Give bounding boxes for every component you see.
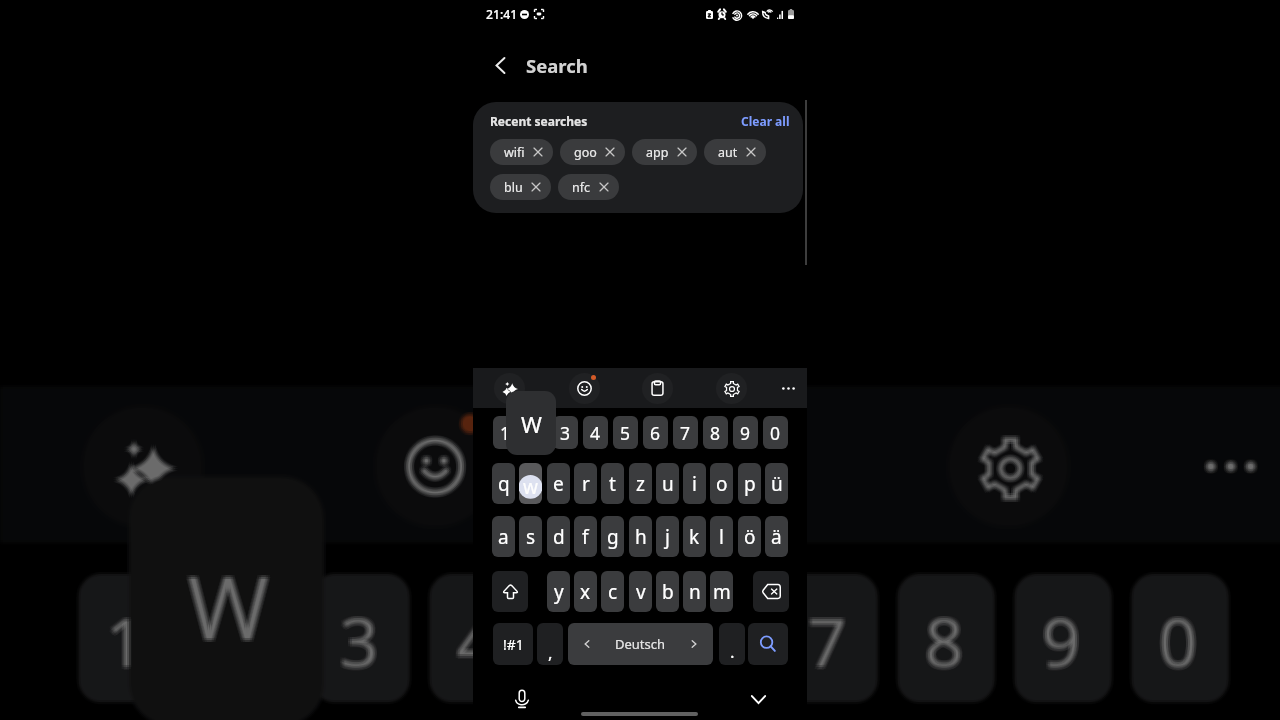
staticText: 6	[693, 595, 735, 689]
staticText: 0	[1159, 595, 1201, 689]
button[interactable]: z	[629, 463, 652, 504]
staticText: 1	[106, 593, 148, 687]
button[interactable]: o	[710, 463, 733, 504]
staticText: 7	[810, 595, 852, 689]
button[interactable]: w	[519, 463, 542, 504]
button[interactable]: b	[656, 571, 679, 612]
button[interactable]: 1	[493, 416, 518, 449]
staticText: 7	[806, 591, 848, 685]
button[interactable]: 8	[703, 416, 728, 449]
button[interactable]: g	[601, 516, 624, 557]
button[interactable]: m	[710, 571, 733, 612]
button[interactable]: Space, Deutsch	[568, 623, 713, 665]
button[interactable]: e	[547, 463, 570, 504]
button[interactable]: j	[656, 516, 679, 557]
button[interactable]: t	[601, 463, 624, 504]
button[interactable]: k	[683, 516, 706, 557]
staticText: 8	[925, 593, 967, 687]
button[interactable]: Shift	[492, 571, 528, 612]
staticText: 3	[337, 593, 380, 687]
staticText: l	[719, 524, 724, 550]
staticText: 0	[1157, 591, 1199, 685]
button[interactable]: blu	[490, 174, 551, 200]
staticText: 6	[693, 593, 736, 687]
staticText: 9	[1042, 595, 1084, 689]
staticText: app	[646, 144, 669, 161]
staticText: m	[713, 579, 731, 605]
button[interactable]: app	[632, 139, 697, 165]
button[interactable]: d	[547, 516, 570, 557]
staticText: 3	[340, 595, 382, 689]
button[interactable]: p	[738, 463, 761, 504]
button[interactable]: 2	[523, 416, 548, 449]
button[interactable]: 0	[763, 416, 788, 449]
button[interactable]: a	[492, 516, 515, 557]
staticText: wifi	[504, 144, 525, 161]
staticText: 8	[923, 595, 965, 689]
button[interactable]: q	[492, 463, 515, 504]
button[interactable]: wifi	[490, 139, 553, 165]
staticText: W	[187, 549, 269, 670]
button[interactable]: Back	[483, 48, 517, 82]
button[interactable]: Clear all	[740, 113, 791, 129]
button[interactable]: 6	[643, 416, 668, 449]
button[interactable]: !#1	[493, 623, 533, 665]
staticText: W	[189, 544, 271, 665]
staticText: 8	[925, 595, 967, 689]
button[interactable]: aut	[704, 139, 766, 165]
button[interactable]: nfc	[558, 174, 619, 200]
button[interactable]: Emoji	[569, 373, 600, 404]
staticText: 8	[925, 591, 967, 685]
button[interactable]: h	[629, 516, 652, 557]
staticText: 5	[571, 593, 614, 687]
button[interactable]: v	[629, 571, 652, 612]
button[interactable]: s	[519, 516, 542, 557]
button[interactable]: u	[656, 463, 679, 504]
staticText: 4	[457, 593, 499, 687]
staticText: 5	[576, 593, 619, 687]
staticText: 9	[1042, 591, 1084, 685]
button[interactable]: .	[719, 623, 745, 665]
staticText: 8	[927, 591, 969, 685]
button[interactable]: ü	[765, 463, 788, 504]
button[interactable]: Voice input	[508, 685, 536, 713]
staticText: 2	[225, 591, 267, 685]
button[interactable]: n	[683, 571, 706, 612]
button[interactable]: More options	[773, 373, 804, 404]
button[interactable]: AI suggestions	[494, 373, 525, 404]
staticText: ü	[771, 471, 783, 497]
button[interactable]: 3	[553, 416, 578, 449]
staticText: 5	[574, 593, 616, 687]
button[interactable]: 7	[673, 416, 698, 449]
button[interactable]: c	[601, 571, 624, 612]
staticText: 0	[770, 421, 781, 445]
button[interactable]: Settings	[716, 373, 747, 404]
button[interactable]: y	[547, 571, 570, 612]
staticText: 7	[808, 591, 850, 685]
button[interactable]: Search	[748, 623, 788, 665]
staticText: 4	[457, 595, 499, 689]
button[interactable]: Clipboard	[642, 373, 673, 404]
button[interactable]: Backspace	[753, 571, 789, 612]
staticText: 5	[574, 591, 616, 685]
button[interactable]: x	[574, 571, 597, 612]
button[interactable]: 9	[733, 416, 758, 449]
button[interactable]: ö	[738, 516, 761, 557]
button[interactable]: l	[710, 516, 733, 557]
button[interactable]: goo	[560, 139, 625, 165]
staticText: 3	[340, 593, 382, 687]
button[interactable]: ä	[765, 516, 788, 557]
button[interactable]: r	[574, 463, 597, 504]
staticText: 1	[108, 595, 150, 689]
staticText: W	[185, 544, 267, 665]
button[interactable]: i	[683, 463, 706, 504]
button[interactable]: Hide keyboard	[744, 685, 772, 713]
staticText: 1	[104, 595, 146, 689]
staticText: Search	[526, 53, 588, 78]
staticText: 1	[108, 593, 151, 687]
button[interactable]: 4	[583, 416, 608, 449]
button[interactable]: f	[574, 516, 597, 557]
button[interactable]: ,	[537, 623, 563, 665]
button[interactable]: 5	[613, 416, 638, 449]
staticText: 2	[221, 591, 263, 685]
